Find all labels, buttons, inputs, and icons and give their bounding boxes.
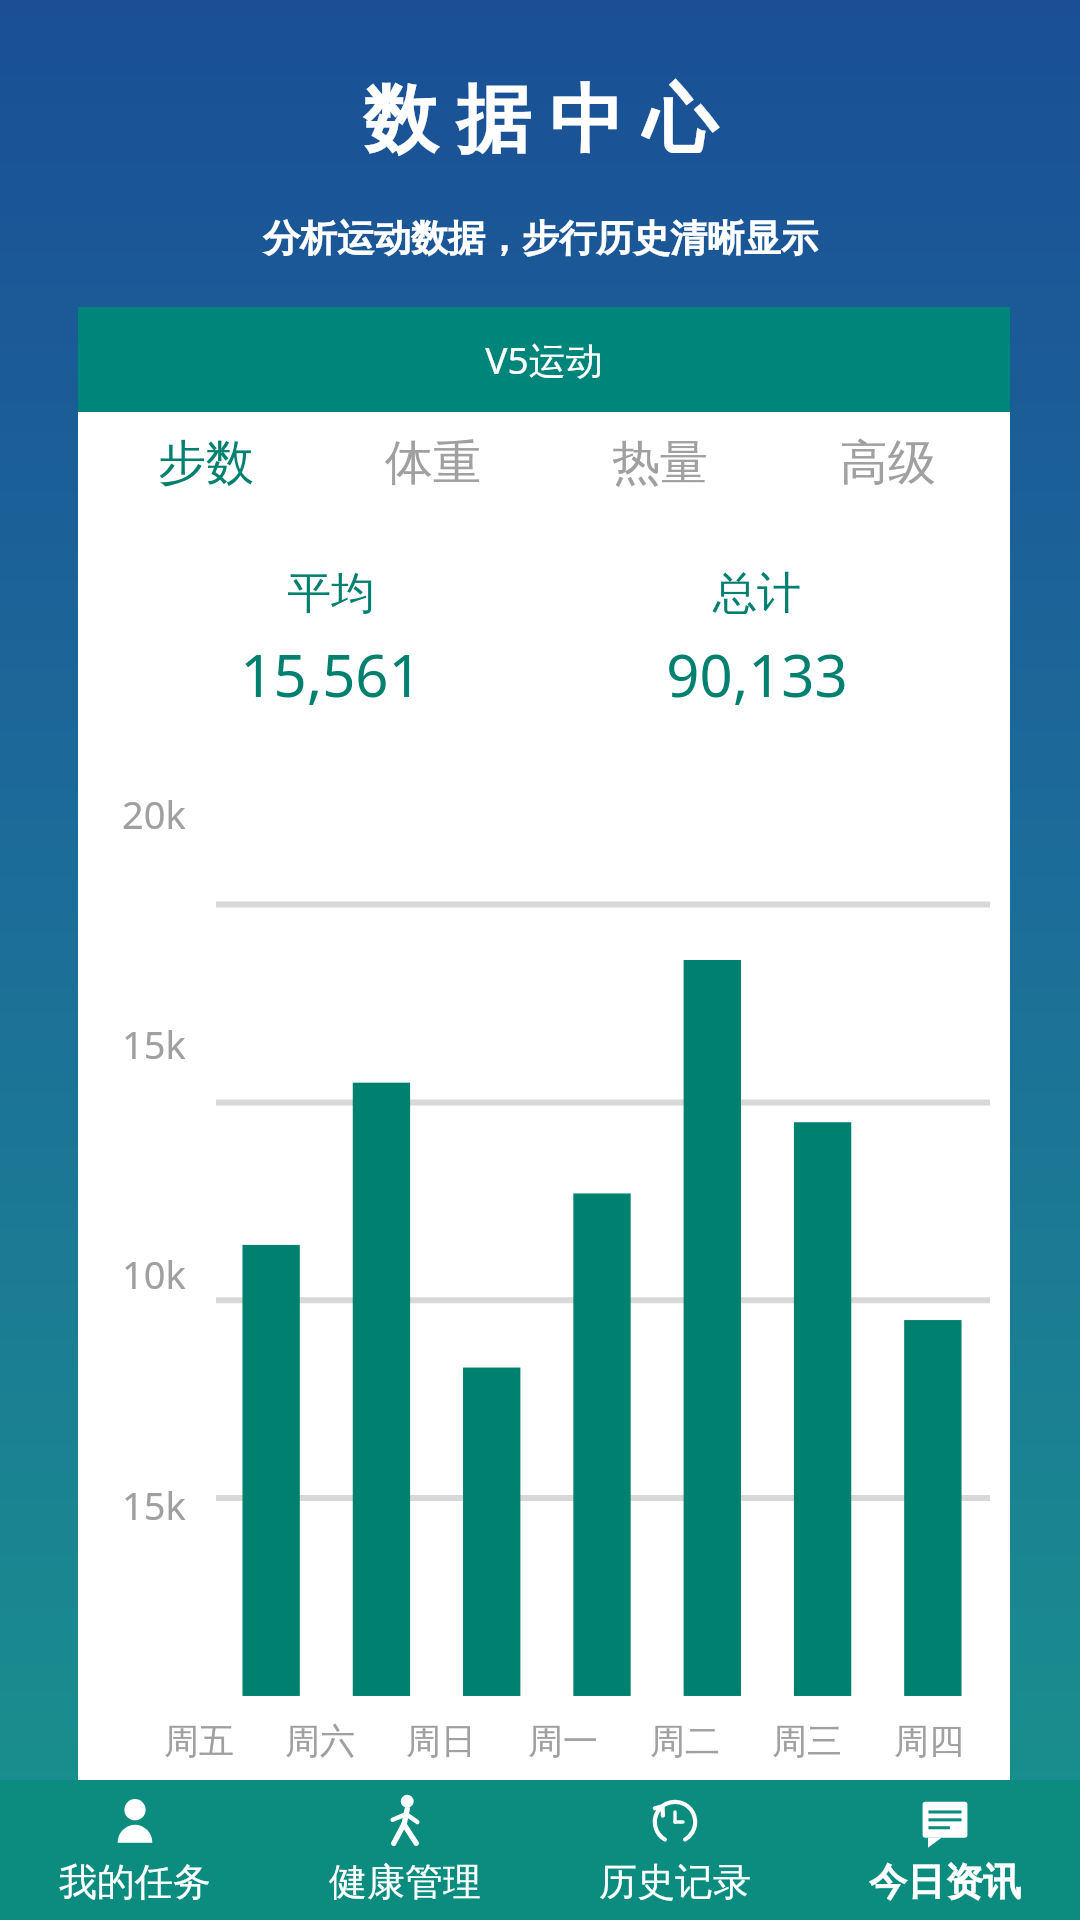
staticText: 我的任务 (59, 1858, 211, 1906)
staticText: 体重 (385, 433, 481, 493)
staticText: 平均 (287, 566, 375, 621)
staticText: 90,133 (666, 635, 848, 714)
staticText: 热量 (612, 433, 708, 493)
staticText: 20k (122, 788, 186, 840)
button[interactable]: 热量 (546, 412, 774, 514)
button[interactable]: 高级 (774, 412, 1002, 514)
button[interactable]: 历史记录 (540, 1780, 810, 1920)
button[interactable]: 今日资讯 (810, 1780, 1080, 1920)
staticText: 10k (122, 1248, 186, 1300)
staticText: 总计 (713, 566, 801, 621)
staticText: 高级 (840, 433, 936, 493)
staticText: 周一 (528, 1719, 598, 1763)
staticText: 15k (122, 1479, 186, 1531)
staticText: 今日资讯 (869, 1858, 1021, 1906)
staticText: 周四 (894, 1719, 964, 1763)
staticText: 15,561 (240, 635, 422, 714)
staticText: 数 据 中 心 (363, 66, 717, 167)
staticText: 周二 (650, 1719, 720, 1763)
button[interactable]: 总计 (544, 566, 970, 714)
staticText: 15k (122, 1018, 186, 1070)
button[interactable]: V5运动 (78, 307, 1010, 412)
button[interactable]: 我的任务 (0, 1780, 270, 1920)
button[interactable]: 步数 (92, 412, 319, 514)
button[interactable]: 体重 (319, 412, 546, 514)
staticText: 周五 (164, 1719, 234, 1763)
button[interactable]: 健康管理 (270, 1780, 540, 1920)
staticText: V5运动 (485, 334, 603, 385)
staticText: 健康管理 (329, 1858, 481, 1906)
staticText: 步数 (158, 433, 254, 493)
staticText: 历史记录 (599, 1858, 751, 1906)
staticText: 周三 (772, 1719, 842, 1763)
staticText: 周六 (285, 1719, 355, 1763)
staticText: 周日 (406, 1719, 476, 1763)
staticText: 分析运动数据，步行历史清晰显示 (263, 215, 818, 262)
button[interactable]: 平均 (118, 566, 544, 714)
